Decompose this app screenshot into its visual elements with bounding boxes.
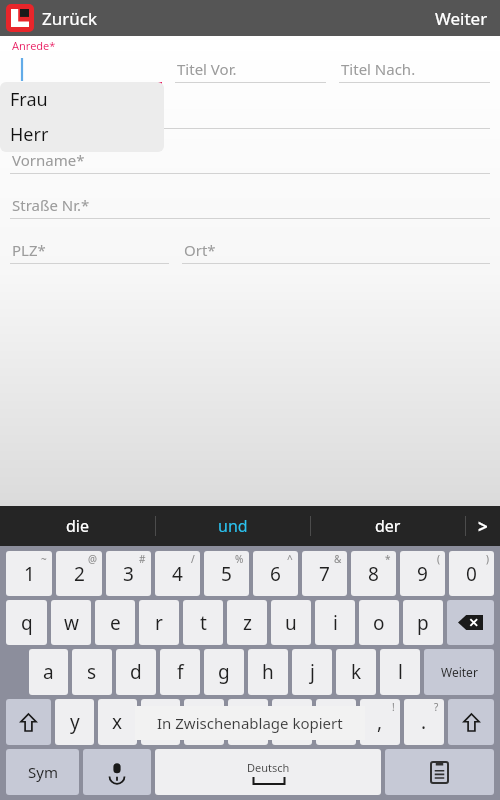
staticText: Weiter <box>435 7 488 30</box>
staticText: 0 <box>466 561 477 587</box>
button[interactable]: v <box>184 699 224 745</box>
button[interactable]: Weiter <box>424 649 494 695</box>
button[interactable]: Frau <box>0 82 164 117</box>
staticText: i <box>333 610 338 636</box>
staticText: y <box>70 709 80 735</box>
button[interactable]: 7 <box>302 551 347 596</box>
button[interactable]: m <box>316 699 356 745</box>
button[interactable]: , <box>360 699 400 745</box>
button[interactable]: x <box>98 699 137 745</box>
button[interactable]: 0 <box>449 551 494 596</box>
staticText: g <box>218 659 230 685</box>
button[interactable]: f <box>160 649 200 695</box>
button[interactable]: 4 <box>155 551 200 596</box>
button[interactable] <box>10 55 162 84</box>
staticText: ? <box>434 700 439 714</box>
staticText: 9 <box>417 561 428 587</box>
button[interactable]: 5 <box>204 551 249 596</box>
staticText: 4 <box>172 561 183 587</box>
button[interactable]: g <box>204 649 244 695</box>
button[interactable]: Titel Vor. <box>175 55 326 83</box>
staticText: > <box>478 515 488 538</box>
staticText: Titel Vor. <box>177 59 237 79</box>
button[interactable]: 3 <box>106 551 151 596</box>
button[interactable]: . <box>404 699 444 745</box>
staticText: 2 <box>74 561 85 587</box>
button[interactable]: die <box>0 506 155 546</box>
button[interactable]: Sym <box>6 749 79 795</box>
button[interactable]: y <box>55 699 94 745</box>
button[interactable]: k <box>336 649 376 695</box>
staticText: p <box>417 610 429 636</box>
button[interactable]: z <box>227 600 267 645</box>
staticText: e <box>110 610 121 636</box>
button[interactable]: w <box>51 600 91 645</box>
button[interactable]: Shift <box>6 699 51 745</box>
button[interactable]: r <box>139 600 179 645</box>
staticText: Deutsch <box>247 760 290 775</box>
staticText: # <box>139 552 146 566</box>
button[interactable]: Titel Nach. <box>339 55 490 83</box>
button[interactable]: i <box>315 600 355 645</box>
button[interactable]: j <box>292 649 332 695</box>
button[interactable]: Voice input <box>83 749 151 795</box>
button[interactable]: p <box>403 600 443 645</box>
button[interactable]: Backspace <box>447 600 494 645</box>
button[interactable]: u <box>271 600 311 645</box>
staticText: 8 <box>368 561 379 587</box>
staticText: 6 <box>270 561 281 587</box>
button[interactable]: 6 <box>253 551 298 596</box>
button[interactable]: und <box>156 506 310 546</box>
button[interactable]: o <box>359 600 399 645</box>
button[interactable]: a <box>29 649 68 695</box>
staticText: Zurück <box>42 7 97 30</box>
button[interactable]: c <box>141 699 180 745</box>
staticText: Weiter <box>441 664 478 680</box>
staticText: % <box>235 552 244 566</box>
button[interactable]: App logo <box>0 0 105 36</box>
staticText: f <box>177 659 184 685</box>
button[interactable]: Straße Nr.* <box>10 191 490 219</box>
button[interactable]: d <box>116 649 156 695</box>
button[interactable]: 8 <box>351 551 396 596</box>
button[interactable]: q <box>6 600 47 645</box>
staticText: u <box>285 610 297 636</box>
staticText: k <box>351 659 362 685</box>
staticText: a <box>43 659 54 685</box>
button[interactable]: 2 <box>56 551 102 596</box>
staticText: q <box>21 610 33 636</box>
button[interactable]: Clipboard <box>385 749 494 795</box>
staticText: Nachname* <box>12 105 97 125</box>
staticText: / <box>191 552 195 566</box>
button[interactable]: l <box>380 649 420 695</box>
button[interactable]: der <box>311 506 465 546</box>
button[interactable]: Shift <box>448 699 494 745</box>
button[interactable]: PLZ* <box>10 236 169 264</box>
staticText: v <box>199 709 209 735</box>
staticText: * <box>385 552 391 566</box>
button[interactable]: More suggestions <box>466 506 500 546</box>
button[interactable]: e <box>95 600 135 645</box>
staticText: m <box>327 709 345 735</box>
staticText: t <box>200 610 207 636</box>
staticText: Titel Nach. <box>341 59 416 79</box>
button[interactable]: 9 <box>400 551 445 596</box>
other: App logo <box>6 4 34 32</box>
staticText: Straße Nr.* <box>12 195 90 215</box>
button[interactable]: h <box>248 649 288 695</box>
staticText: ) <box>486 552 489 566</box>
button[interactable]: Weiter <box>423 0 500 36</box>
button[interactable]: s <box>72 649 112 695</box>
button[interactable]: t <box>183 600 223 645</box>
button[interactable]: Vorname* <box>10 146 490 174</box>
button[interactable]: 1 <box>6 551 52 596</box>
button[interactable]: n <box>272 699 312 745</box>
button[interactable]: Herr <box>0 117 164 152</box>
button[interactable]: Ort* <box>182 236 490 264</box>
button[interactable]: Deutsch <box>155 749 381 795</box>
staticText: l <box>398 659 403 685</box>
staticText: ^ <box>287 552 293 566</box>
button[interactable]: Nachname* <box>10 101 490 129</box>
button[interactable]: b <box>228 699 268 745</box>
staticText: PLZ* <box>12 240 46 260</box>
